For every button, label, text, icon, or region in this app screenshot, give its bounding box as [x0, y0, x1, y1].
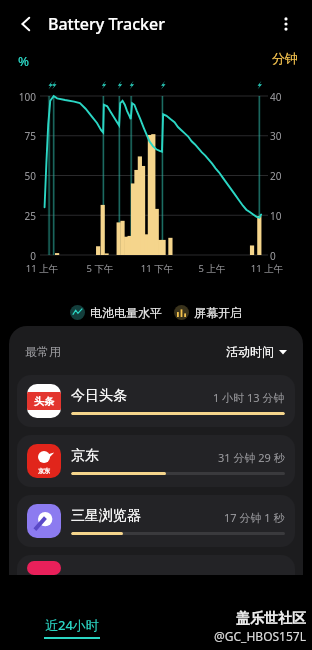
staticText: 近24小时	[45, 616, 99, 634]
button[interactable]: 近24小时	[44, 616, 100, 639]
staticText: 11 上午	[245, 262, 289, 275]
staticText: 100	[4, 90, 36, 104]
button[interactable]	[17, 555, 295, 575]
staticText: 0	[270, 249, 294, 263]
staticText: 30	[270, 129, 294, 143]
staticText: 京东	[71, 447, 99, 465]
staticText: %	[18, 52, 30, 70]
staticText: 10	[270, 209, 294, 223]
staticText: Battery Tracker	[48, 13, 165, 35]
staticText: 20	[270, 169, 294, 183]
staticText: 5 上午	[190, 262, 234, 275]
button[interactable]: 京东	[17, 435, 295, 487]
staticText: 11 上午	[20, 262, 64, 275]
staticText: 75	[4, 129, 36, 143]
button[interactable]: 头条	[17, 375, 295, 427]
staticText: 活动时间	[226, 344, 274, 359]
button[interactable]: 三星浏览器	[17, 495, 295, 547]
staticText: 电池电量水平	[90, 305, 162, 320]
staticText: 17 分钟 1 秒	[224, 510, 285, 525]
staticText: 50	[4, 169, 36, 183]
staticText: 盖乐世社区	[236, 610, 306, 628]
staticText: 31 分钟 29 秒	[218, 450, 285, 465]
button[interactable]: Back	[8, 6, 44, 42]
staticText: 分钟	[272, 50, 298, 66]
staticText: 5 下午	[78, 262, 122, 275]
staticText: 25	[4, 209, 36, 223]
button[interactable]: 活动时间	[222, 340, 291, 363]
staticText: 11 下午	[135, 262, 179, 275]
staticText: 1 小时 13 分钟	[213, 390, 285, 405]
staticText: 京东	[38, 467, 50, 475]
staticText: 0	[4, 249, 36, 263]
staticText: 今日头条	[71, 387, 127, 405]
staticText: 屏幕开启	[194, 305, 242, 320]
staticText: 头条	[34, 395, 54, 408]
staticText: 最常用	[25, 344, 61, 359]
staticText: 40	[270, 90, 294, 104]
staticText: @GC_HBOS157L	[214, 628, 306, 644]
staticText: 三星浏览器	[71, 507, 141, 525]
button[interactable]: More options	[268, 6, 304, 42]
